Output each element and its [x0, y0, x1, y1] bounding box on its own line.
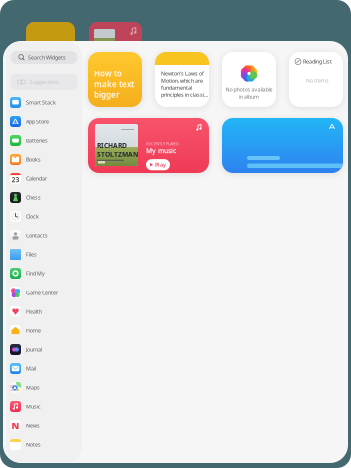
button[interactable]: Smart Stack	[6, 93, 82, 112]
staticText: STOLTZMAN	[97, 150, 138, 159]
button[interactable]: Clock	[6, 207, 82, 226]
staticText: News	[26, 422, 40, 429]
staticText: N	[11, 419, 19, 432]
button[interactable]: Notes	[6, 435, 82, 454]
staticText: Contacts	[26, 232, 48, 239]
staticText: in album	[239, 93, 259, 100]
staticText: RICHARD	[97, 141, 127, 150]
staticText: Music	[26, 403, 41, 410]
staticText: Play	[155, 161, 166, 168]
staticText: Maps	[26, 384, 40, 391]
button[interactable]: Reading List	[289, 52, 343, 107]
staticText: Newton's Laws of Motion, which are funda…	[161, 70, 208, 98]
button[interactable]: Game Center	[6, 283, 82, 302]
staticText: Game Center	[26, 289, 58, 296]
staticText: Home	[26, 327, 41, 334]
button[interactable]: Contacts	[6, 226, 82, 245]
button[interactable]: App Store	[6, 112, 82, 131]
button[interactable]: Journal	[6, 340, 82, 359]
staticText: 23	[11, 175, 19, 184]
staticText: Calendar	[26, 175, 47, 182]
staticText: Smart Stack	[26, 99, 56, 106]
button[interactable]: Batteries	[6, 131, 82, 150]
staticText: Mail	[26, 365, 36, 372]
staticText: Batteries	[26, 137, 48, 144]
staticText: App Store	[26, 118, 49, 125]
button[interactable]: Health	[6, 302, 82, 321]
staticText: Files	[26, 251, 37, 258]
button[interactable]: Home	[6, 321, 82, 340]
button[interactable]: RICHARD	[88, 118, 209, 173]
button[interactable]: 23	[6, 169, 82, 188]
staticText: No photos available	[225, 86, 272, 93]
staticText: No Items	[306, 77, 329, 84]
button[interactable]: Find My	[6, 264, 82, 283]
staticText: My music	[146, 146, 176, 155]
staticText: Journal	[26, 346, 42, 353]
staticText: How to make text bigger	[94, 68, 134, 100]
button[interactable]: Mail	[6, 359, 82, 378]
staticText: Chess	[26, 194, 41, 201]
staticText: Notes	[26, 441, 41, 448]
staticText: Suggestions	[29, 78, 59, 86]
button[interactable]: Files	[6, 245, 82, 264]
staticText: Clock	[26, 213, 39, 220]
staticText: Health	[26, 308, 42, 315]
button[interactable]	[222, 118, 343, 173]
button[interactable]: Newton's Laws of Motion, which are funda…	[155, 52, 209, 107]
staticText: RECENTLY PLAYED	[146, 141, 179, 146]
staticText: Books	[26, 156, 41, 163]
button[interactable]: How to make text bigger	[88, 52, 142, 107]
staticText: Reading List	[303, 58, 332, 65]
staticText: Find My	[26, 270, 45, 277]
button[interactable]: N	[6, 416, 82, 435]
button[interactable]: Music	[6, 397, 82, 416]
button[interactable]: No photos available	[222, 52, 276, 107]
button[interactable]: Maps	[6, 378, 82, 397]
button[interactable]: Chess	[6, 188, 82, 207]
staticText: Search Widgets	[28, 54, 66, 61]
button[interactable]: Books	[6, 150, 82, 169]
